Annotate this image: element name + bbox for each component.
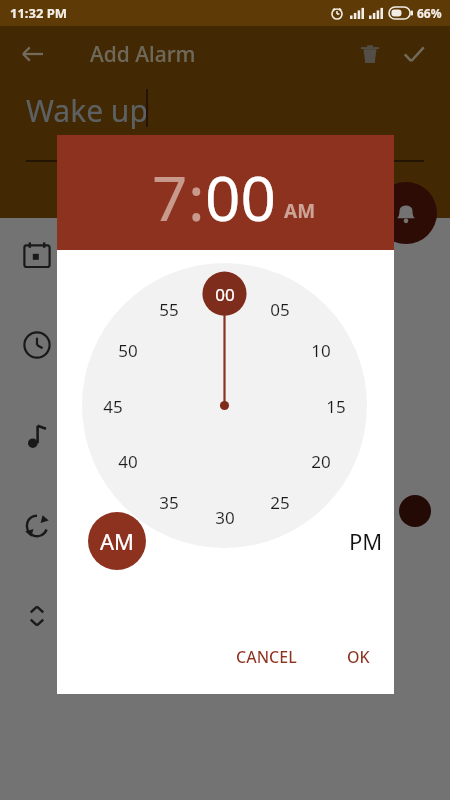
button[interactable]: 7 (152, 155, 188, 239)
button[interactable]: 00 (208, 281, 242, 307)
button[interactable]: PM (337, 512, 395, 570)
staticText: 05 (270, 298, 290, 321)
button[interactable]: Alarm ringtone (375, 182, 437, 244)
staticText: AM (100, 526, 135, 556)
button[interactable]: OK (335, 638, 382, 676)
staticText: 15 (326, 395, 346, 418)
staticText: Wake up (26, 90, 148, 131)
button[interactable] (399, 495, 431, 527)
button[interactable]: 50 (111, 337, 145, 363)
button[interactable]: 40 (111, 448, 145, 474)
staticText: AM (284, 198, 316, 224)
button[interactable]: Save (392, 32, 436, 76)
button[interactable]: 55 (152, 296, 186, 322)
staticText: 45 (103, 395, 123, 418)
button[interactable]: CANCEL (224, 638, 309, 676)
button[interactable]: 15 (319, 393, 353, 419)
staticText: 10 (311, 339, 331, 362)
button[interactable]: 05 (263, 296, 297, 322)
button[interactable]: 20 (304, 448, 338, 474)
staticText: Add Alarm (90, 40, 196, 69)
staticText: 40 (118, 450, 138, 473)
staticText: 35 (159, 491, 179, 514)
button[interactable]: 30 (208, 504, 242, 530)
staticText: OK (347, 646, 370, 668)
button[interactable]: AM (88, 512, 146, 570)
button[interactable]: Back (12, 34, 52, 74)
button[interactable]: 00 (205, 155, 276, 239)
staticText: : (188, 155, 205, 239)
staticText: 25 (270, 491, 290, 514)
button[interactable]: 35 (152, 489, 186, 515)
button[interactable]: 10 (304, 337, 338, 363)
button[interactable]: Date (22, 240, 52, 270)
button[interactable]: Repeat (22, 511, 52, 541)
button[interactable]: Snooze (24, 603, 50, 629)
staticText: PM (349, 526, 383, 556)
staticText: 30 (215, 506, 235, 529)
staticText: 55 (159, 298, 179, 321)
staticText: 20 (311, 450, 331, 473)
staticText: CANCEL (236, 646, 297, 668)
staticText: 00 (215, 283, 235, 306)
button[interactable]: Time (22, 330, 52, 360)
staticText: 66% (417, 5, 442, 21)
button[interactable]: 45 (96, 393, 130, 419)
staticText: 50 (118, 339, 138, 362)
button[interactable]: Ringtone (22, 421, 52, 451)
staticText: 11:32 PM (10, 4, 68, 22)
button[interactable]: Delete (348, 32, 392, 76)
button[interactable]: 25 (263, 489, 297, 515)
